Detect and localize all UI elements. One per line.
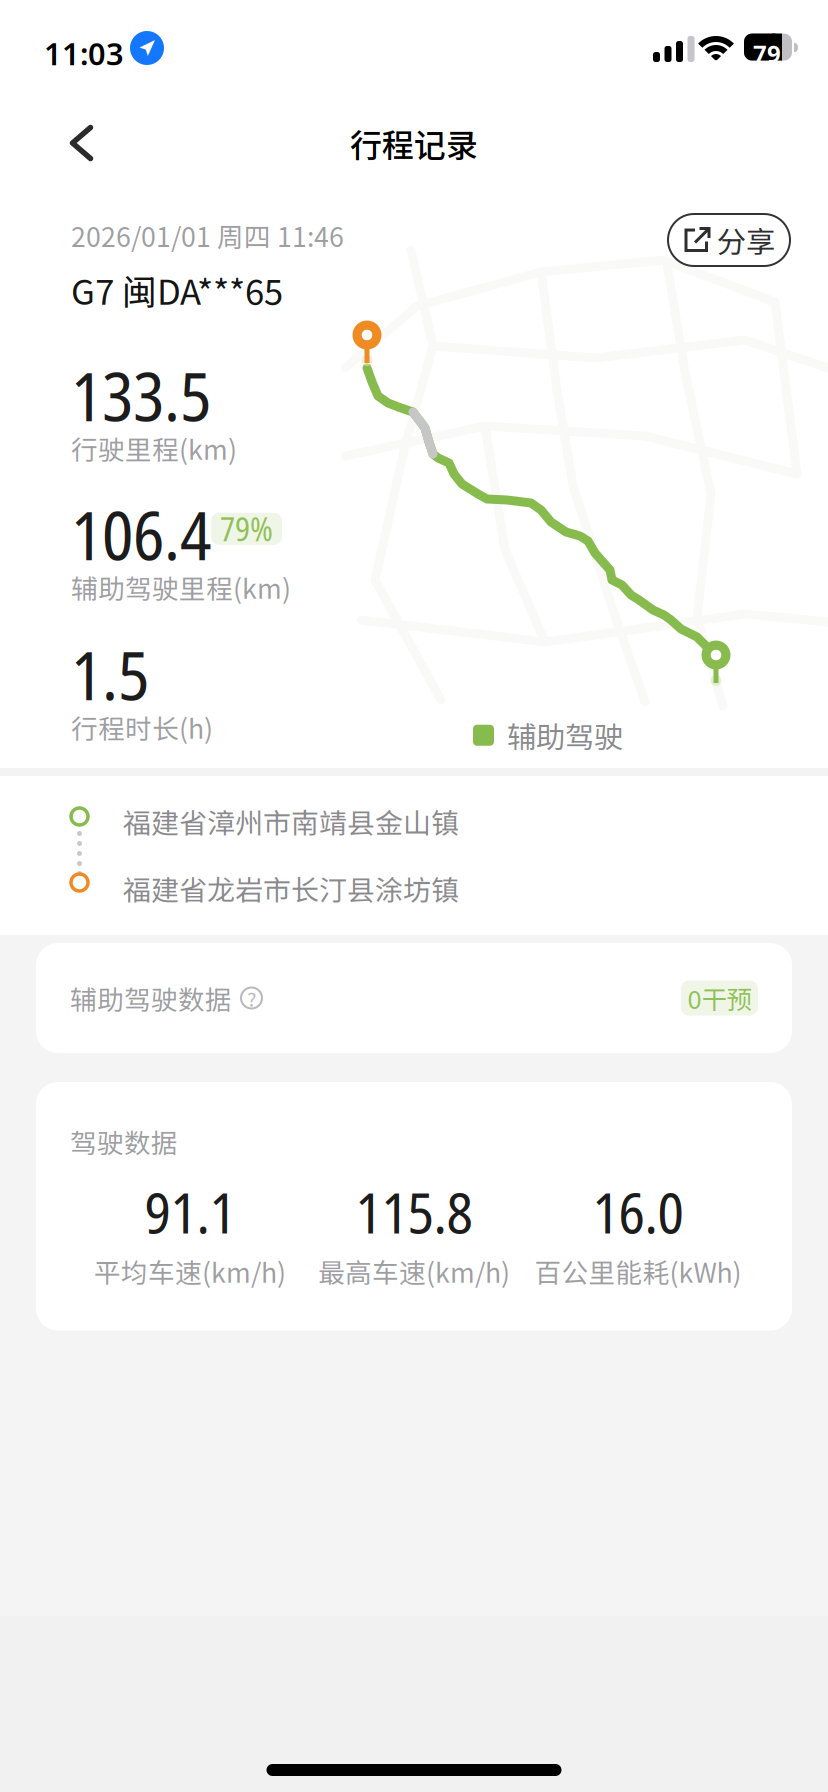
staticText: 1.5	[71, 629, 149, 720]
staticText: G7 闽DA***65	[71, 265, 283, 315]
staticText: 百公里能耗(kWh)	[534, 1252, 741, 1290]
staticText: 91.1	[144, 1174, 235, 1250]
staticText: 驾驶数据	[70, 1122, 178, 1161]
staticText: 16.0	[592, 1174, 683, 1250]
staticText: 福建省龙岩市长汀县涂坊镇	[123, 868, 459, 908]
staticText: 79%	[220, 507, 273, 551]
staticText: 行驶里程(km)	[71, 429, 237, 467]
staticText: 133.5	[71, 350, 211, 441]
staticText: 辅助驾驶数据	[70, 979, 232, 1017]
staticText: 行程时长(h)	[71, 708, 213, 746]
staticText: 0干预	[687, 980, 751, 1016]
staticText: 辅助驾驶	[507, 714, 623, 756]
button[interactable]: 返回	[26, 105, 137, 181]
staticText: 115.8	[355, 1174, 472, 1250]
staticText: 2026/01/01 周四 11:46	[71, 216, 344, 255]
button[interactable]: 辅助驾驶数据	[36, 943, 792, 1053]
staticText: 福建省漳州市南靖县金山镇	[123, 801, 459, 841]
staticText: 平均车速(km/h)	[94, 1252, 286, 1290]
button[interactable]: 分享	[668, 214, 790, 266]
staticText: 行程记录	[350, 120, 478, 166]
staticText: 106.4	[71, 489, 211, 580]
staticText: 辅助驾驶里程(km)	[71, 568, 291, 606]
staticText: 分享	[717, 219, 775, 261]
staticText: 最高车速(km/h)	[318, 1252, 510, 1290]
staticText: 11:03	[44, 33, 124, 74]
staticText: 79	[753, 38, 781, 69]
staticText: ?	[247, 983, 256, 1012]
